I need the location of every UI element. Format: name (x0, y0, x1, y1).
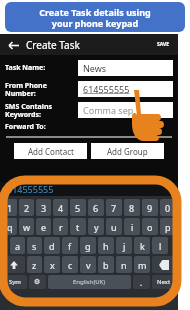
button[interactable]: m (134, 256, 150, 273)
button[interactable]: 7 (106, 199, 122, 216)
button[interactable]: z (27, 256, 42, 273)
staticText: . (140, 277, 143, 288)
staticText: 614555555 (7, 183, 54, 195)
button[interactable]: 2 (19, 199, 34, 216)
staticText: 9 (147, 202, 153, 214)
staticText: Create Task (26, 38, 80, 52)
staticText: Sym (9, 278, 21, 286)
staticText: English(UK) (73, 278, 106, 286)
button[interactable]: News (78, 60, 173, 76)
staticText: a (15, 240, 21, 252)
button[interactable]: Period (133, 275, 150, 289)
button[interactable]: Backspace (152, 256, 176, 273)
button[interactable]: Add Contact (14, 143, 87, 159)
button[interactable]: 1 (2, 199, 17, 216)
button[interactable]: t (70, 218, 86, 235)
button[interactable]: Sym (2, 275, 27, 289)
staticText: o (147, 221, 153, 233)
button[interactable]: SAVE (154, 39, 173, 50)
button[interactable]: w (19, 218, 34, 235)
button[interactable]: Next (152, 275, 176, 289)
staticText: q (7, 221, 13, 233)
staticText: m (138, 259, 147, 271)
staticText: f (68, 240, 72, 252)
button[interactable]: o (142, 218, 158, 235)
button[interactable]: j (116, 237, 132, 254)
button[interactable]: b (98, 256, 114, 273)
button[interactable]: 8 (124, 199, 140, 216)
button[interactable]: g (80, 237, 96, 254)
button[interactable]: s (27, 237, 42, 254)
staticText: i (131, 221, 134, 233)
staticText: z (32, 259, 37, 271)
button[interactable]: q (2, 218, 17, 235)
staticText: 4 (58, 202, 64, 214)
staticText: Forward To: (5, 122, 46, 132)
staticText: l (159, 240, 162, 252)
staticText: r (59, 221, 63, 233)
button[interactable]: Comma sep (78, 102, 173, 118)
button[interactable]: 4 (53, 199, 68, 216)
button[interactable]: f (62, 237, 78, 254)
staticText: 1 (7, 202, 13, 214)
staticText: j (123, 240, 126, 252)
button[interactable]: e (36, 218, 51, 235)
button[interactable]: 0 (160, 199, 176, 216)
button[interactable]: v (80, 256, 96, 273)
button[interactable]: d (44, 237, 60, 254)
button[interactable]: h (98, 237, 114, 254)
staticText: Add Contact (28, 146, 74, 157)
staticText: 2 (24, 202, 30, 214)
staticText: Create Task details using your phone key… (39, 6, 151, 29)
button[interactable]: 6 (88, 199, 104, 216)
button[interactable]: Back (5, 37, 21, 53)
staticText: 7 (111, 202, 117, 214)
staticText: 0 (165, 202, 171, 214)
button[interactable]: u (106, 218, 122, 235)
button[interactable]: y (88, 218, 104, 235)
staticText: Next (157, 278, 171, 286)
button[interactable]: 9 (142, 199, 158, 216)
button[interactable]: English(UK) (48, 275, 131, 289)
staticText: b (103, 259, 109, 271)
button[interactable]: n (116, 256, 132, 273)
button[interactable]: c (62, 256, 78, 273)
staticText: Comma sep (83, 104, 134, 116)
staticText: n (121, 259, 127, 271)
button[interactable]: Language (29, 275, 46, 289)
staticText: Add Group (107, 146, 148, 157)
staticText: k (140, 240, 145, 252)
button[interactable]: i (124, 218, 140, 235)
button[interactable]: p (160, 218, 176, 235)
staticText: Task Name: (5, 63, 46, 73)
staticText: h (103, 240, 109, 252)
button[interactable]: Shift (2, 256, 25, 273)
staticText: News (83, 62, 107, 74)
staticText: u (111, 221, 117, 233)
staticText: 5 (75, 202, 81, 214)
staticText: SAVE (157, 41, 170, 48)
staticText: t (76, 221, 80, 233)
button[interactable]: 3 (36, 199, 51, 216)
staticText: d (49, 240, 55, 252)
button[interactable]: l (152, 237, 168, 254)
button[interactable]: 614555555 (78, 81, 173, 97)
staticText: 3 (41, 202, 47, 214)
staticText: c (68, 259, 73, 271)
button[interactable]: r (53, 218, 68, 235)
button[interactable]: k (134, 237, 150, 254)
button[interactable]: a (10, 237, 25, 254)
staticText: g (85, 240, 91, 252)
staticText: w (23, 221, 31, 233)
staticText: x (50, 259, 55, 271)
staticText: ⚙ (34, 278, 41, 286)
button[interactable]: x (44, 256, 60, 273)
staticText: SMS Contains Keywords: (5, 102, 52, 119)
staticText: 614555555 (83, 83, 130, 95)
staticText: From Phone Number: (5, 81, 47, 98)
button[interactable]: 5 (70, 199, 86, 216)
staticText: v (86, 259, 91, 271)
staticText: e (41, 221, 47, 233)
button[interactable]: Add Group (91, 143, 164, 159)
staticText: p (165, 221, 171, 233)
